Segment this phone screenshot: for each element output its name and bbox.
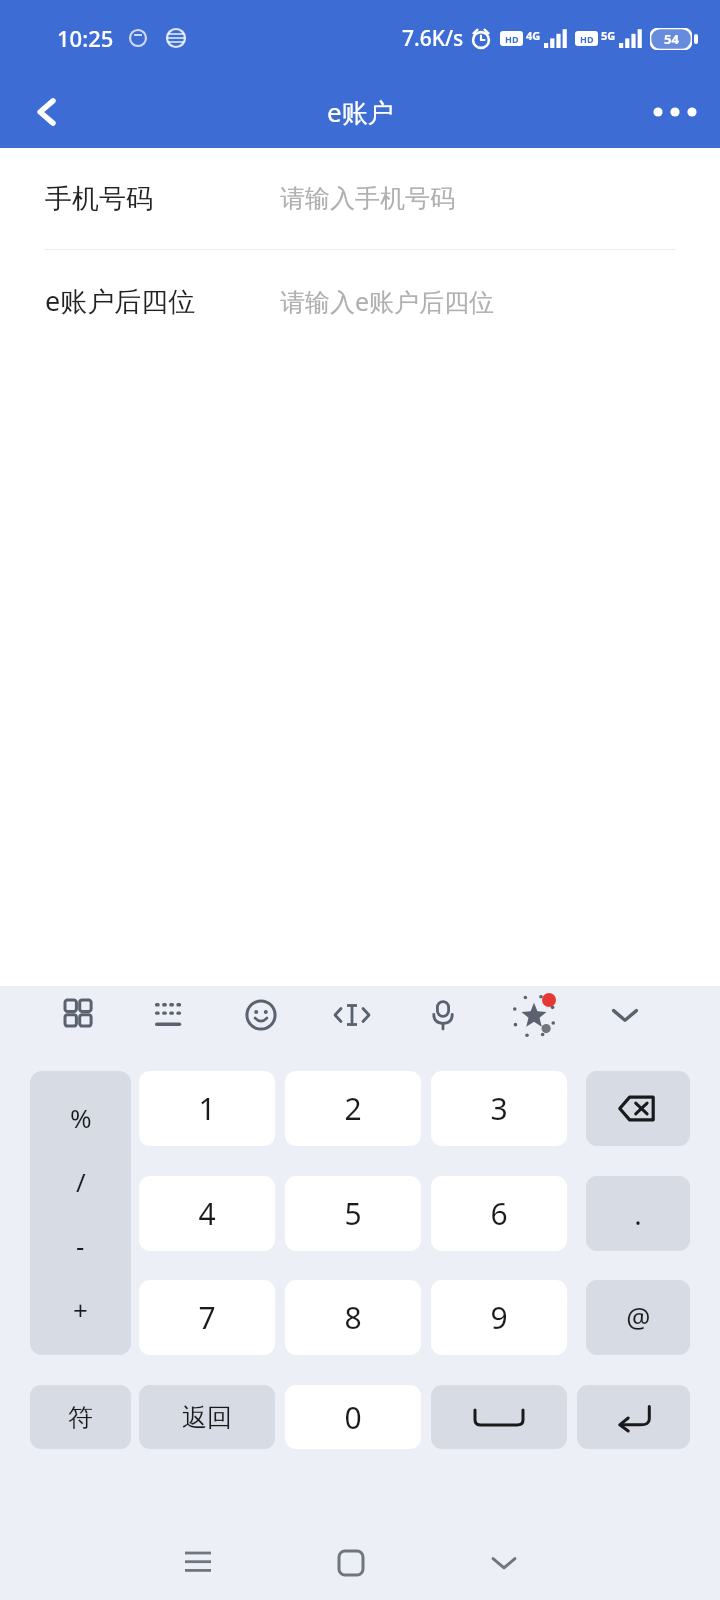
staticText: HD: [505, 33, 519, 45]
button[interactable]: 5: [285, 1176, 421, 1251]
staticText: e账户后四位: [45, 282, 196, 319]
staticText: @: [626, 1299, 651, 1336]
button[interactable]: Back: [16, 81, 78, 143]
button[interactable]: 6: [431, 1176, 567, 1251]
button[interactable]: Space: [431, 1385, 567, 1449]
button[interactable]: 符: [30, 1385, 131, 1449]
button[interactable]: 0: [285, 1385, 421, 1449]
button[interactable]: .: [586, 1176, 690, 1251]
staticText: 请输入e账户后四位: [280, 284, 495, 318]
button[interactable]: Home: [321, 1526, 381, 1600]
staticText: 9: [490, 1297, 508, 1338]
staticText: %: [70, 1100, 92, 1135]
button[interactable]: e账户后四位: [0, 250, 720, 351]
button[interactable]: Apps: [51, 986, 109, 1044]
button[interactable]: Recents: [168, 1526, 228, 1600]
button[interactable]: Back: [474, 1526, 534, 1600]
staticText: 3: [490, 1088, 508, 1129]
staticText: e账户: [327, 94, 394, 130]
button[interactable]: 8: [285, 1280, 421, 1355]
button[interactable]: Emoji: [232, 986, 290, 1044]
button[interactable]: @: [586, 1280, 690, 1355]
staticText: 手机号码: [45, 182, 153, 216]
button[interactable]: Voice input: [414, 986, 472, 1044]
button[interactable]: Cursor control: [323, 986, 381, 1044]
staticText: 2: [344, 1088, 362, 1129]
staticText: +: [73, 1292, 88, 1327]
button[interactable]: %: [30, 1071, 131, 1355]
button[interactable]: 2: [285, 1071, 421, 1146]
staticText: .: [634, 1195, 642, 1233]
staticText: 返回: [182, 1402, 232, 1433]
staticText: 4: [198, 1193, 216, 1234]
button[interactable]: 3: [431, 1071, 567, 1146]
staticText: 6: [490, 1193, 508, 1234]
button[interactable]: 返回: [139, 1385, 275, 1449]
staticText: 0: [344, 1397, 362, 1438]
button[interactable]: 1: [139, 1071, 275, 1146]
button[interactable]: Backspace: [586, 1071, 690, 1146]
staticText: 5: [344, 1193, 362, 1234]
staticText: 请输入手机号码: [280, 183, 455, 214]
button[interactable]: More options: [644, 81, 706, 143]
staticText: 10:25: [57, 23, 114, 53]
staticText: HD: [580, 33, 594, 45]
staticText: 符: [68, 1402, 93, 1433]
button[interactable]: 7: [139, 1280, 275, 1355]
button[interactable]: Hide keyboard: [596, 986, 654, 1044]
staticText: 7.6K/s: [402, 24, 464, 53]
staticText: 4G: [526, 28, 541, 43]
staticText: 7: [198, 1297, 216, 1338]
staticText: -: [76, 1228, 85, 1263]
button[interactable]: Stickers: [505, 986, 563, 1044]
staticText: 1: [198, 1088, 216, 1129]
button[interactable]: Enter: [577, 1385, 690, 1449]
staticText: 5G: [601, 28, 616, 43]
staticText: 54: [664, 30, 679, 48]
button[interactable]: 手机号码: [0, 148, 720, 249]
button[interactable]: 4: [139, 1176, 275, 1251]
staticText: 8: [344, 1297, 362, 1338]
staticText: /: [76, 1164, 86, 1199]
button[interactable]: 9: [431, 1280, 567, 1355]
button[interactable]: Keyboard layout: [141, 986, 199, 1044]
